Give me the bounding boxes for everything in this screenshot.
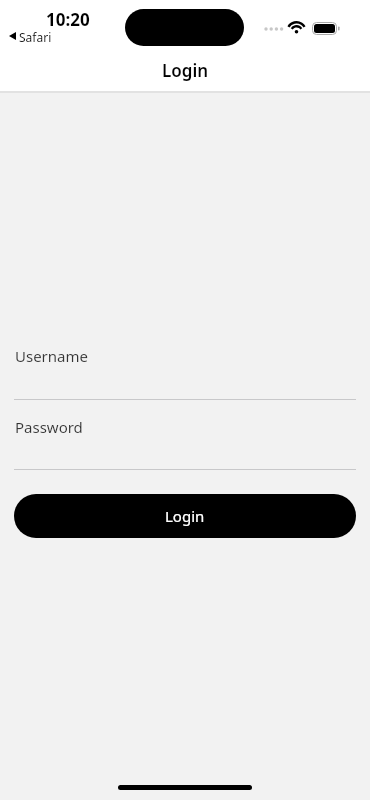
staticText: Password (15, 417, 83, 437)
button[interactable]: Login (14, 494, 356, 538)
staticText: Login (162, 59, 209, 82)
button[interactable] (14, 410, 356, 470)
staticText: Username (15, 346, 88, 366)
staticText: 10:20 (46, 8, 90, 31)
staticText: Safari (19, 29, 52, 45)
staticText: Login (165, 506, 205, 526)
button[interactable] (14, 340, 356, 400)
